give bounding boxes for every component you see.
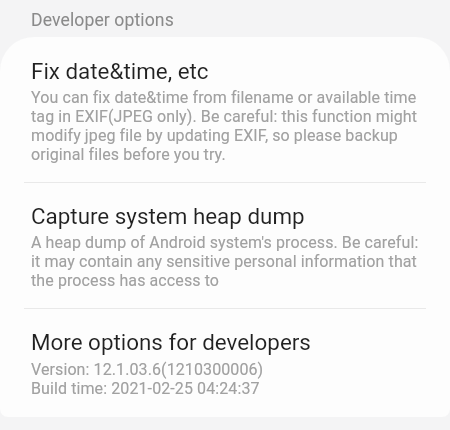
button[interactable]: Fix date&time, etc [0, 37, 450, 182]
staticText: Version: 12.1.03.6(1210300006) Build tim… [31, 360, 264, 398]
staticText: Capture system heap dump [31, 203, 305, 229]
staticText: Fix date&time, etc [31, 58, 209, 84]
staticText: You can fix date&time from filename or a… [31, 88, 419, 164]
staticText: A heap dump of Android system's process.… [31, 233, 419, 290]
staticText: Developer options [31, 10, 174, 30]
button[interactable]: More options for developers [0, 309, 450, 416]
staticText: More options for developers [31, 329, 311, 355]
button[interactable]: Capture system heap dump [0, 183, 450, 308]
